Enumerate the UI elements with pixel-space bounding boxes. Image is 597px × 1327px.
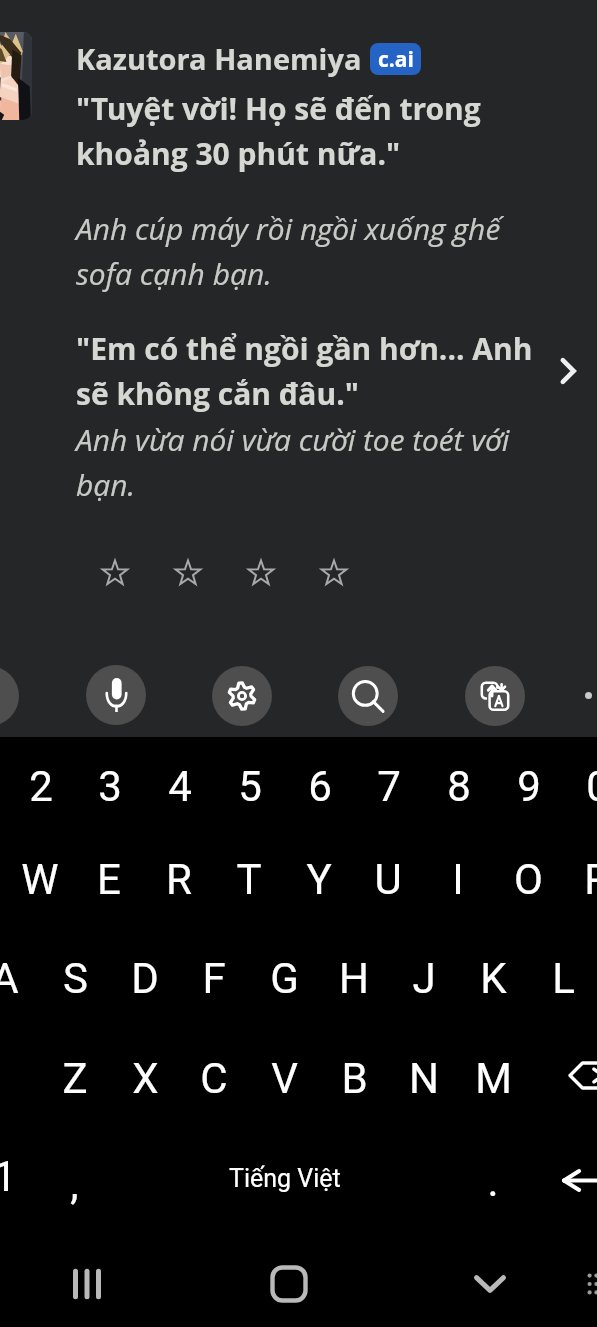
staticText: K: [480, 954, 507, 1003]
button[interactable]: 5: [216, 757, 284, 815]
button[interactable]: K: [459, 949, 527, 1007]
button[interactable]: H: [320, 949, 388, 1007]
button[interactable]: S: [41, 949, 109, 1007]
button[interactable]: U: [354, 850, 422, 908]
staticText: 6: [308, 762, 332, 811]
button[interactable]: ,: [40, 1155, 108, 1213]
staticText: 7: [377, 762, 401, 811]
button[interactable]: Voice input: [86, 665, 146, 725]
button[interactable]: C: [180, 1049, 248, 1107]
staticText: I: [452, 855, 464, 904]
staticText: F: [202, 954, 226, 1003]
button[interactable]: Recents: [67, 1264, 107, 1304]
button[interactable]: 0: [564, 757, 597, 815]
button[interactable]: L: [529, 949, 597, 1007]
staticText: !1: [0, 1152, 17, 1201]
button[interactable]: N: [390, 1049, 458, 1107]
staticText: E: [97, 855, 121, 904]
button[interactable]: X: [111, 1049, 179, 1107]
staticText: T: [236, 855, 262, 904]
staticText: Y: [306, 855, 332, 904]
button[interactable]: 3: [76, 757, 144, 815]
staticText: R: [166, 855, 192, 904]
button[interactable]: 8: [425, 757, 493, 815]
staticText: Anh cúp máy rồi ngồi xuống ghế sofa cạnh…: [76, 208, 526, 293]
button[interactable]: T: [215, 850, 283, 908]
staticText: W: [21, 855, 59, 904]
button[interactable]: Rate 3 stars: [240, 552, 282, 594]
staticText: P: [584, 855, 597, 904]
staticText: A: [0, 954, 19, 1003]
button[interactable]: 6: [286, 757, 354, 815]
staticText: 8: [447, 762, 471, 811]
button[interactable]: Settings: [212, 666, 272, 726]
button[interactable]: J: [390, 949, 458, 1007]
staticText: U: [374, 855, 402, 904]
staticText: 5: [238, 762, 262, 811]
button[interactable]: 7: [355, 757, 423, 815]
button[interactable]: c.ai: [370, 43, 421, 75]
button[interactable]: Y: [285, 850, 353, 908]
button[interactable]: R: [145, 850, 213, 908]
staticText: H: [339, 954, 369, 1003]
button[interactable]: I: [424, 850, 492, 908]
button[interactable]: Tiếng Việt: [212, 1156, 357, 1200]
button[interactable]: Emoji: [0, 666, 19, 726]
staticText: .: [487, 1157, 499, 1206]
staticText: V: [271, 1054, 298, 1103]
staticText: L: [552, 954, 575, 1003]
button[interactable]: 4: [146, 757, 214, 815]
staticText: O: [514, 855, 543, 904]
button[interactable]: E: [75, 850, 143, 908]
staticText: Tiếng Việt: [229, 1164, 341, 1193]
button[interactable]: W: [6, 850, 74, 908]
staticText: 3: [98, 762, 122, 811]
staticText: D: [131, 954, 159, 1003]
button[interactable]: .: [459, 1152, 527, 1210]
button[interactable]: Rate 2 stars: [167, 552, 209, 594]
button[interactable]: Backspace: [568, 1061, 597, 1090]
button[interactable]: O: [494, 850, 562, 908]
button[interactable]: Home: [269, 1264, 309, 1304]
button[interactable]: 2: [7, 757, 75, 815]
button[interactable]: !1: [0, 1147, 33, 1205]
button[interactable]: More options: [575, 1266, 597, 1302]
staticText: X: [132, 1054, 159, 1103]
button[interactable]: Next message: [544, 347, 592, 395]
staticText: M: [475, 1054, 512, 1103]
staticText: Kazutora Hanemiya: [76, 39, 362, 78]
button[interactable]: Hide keyboard: [468, 1262, 512, 1306]
staticText: 9: [517, 762, 541, 811]
button[interactable]: B: [320, 1049, 388, 1107]
button[interactable]: F: [180, 949, 248, 1007]
button[interactable]: P: [563, 850, 597, 908]
staticText: Z: [62, 1054, 88, 1103]
button[interactable]: A: [0, 949, 39, 1007]
staticText: S: [63, 954, 88, 1003]
staticText: ,: [70, 1160, 79, 1209]
button[interactable]: Rate 4 stars: [313, 552, 355, 594]
button[interactable]: Z: [41, 1049, 109, 1107]
staticText: 0: [586, 762, 597, 811]
staticText: J: [412, 954, 436, 1003]
staticText: Anh vừa nói vừa cười toe toét với bạn.: [76, 419, 528, 504]
button[interactable]: Enter: [562, 1169, 597, 1192]
staticText: c.ai: [378, 45, 414, 74]
button[interactable]: D: [111, 949, 179, 1007]
button[interactable]: Translate: [465, 666, 525, 726]
button[interactable]: G: [250, 949, 318, 1007]
staticText: "Tuyệt vời! Họ sẽ đến trong khoảng 30 ph…: [76, 88, 496, 173]
button[interactable]: Character avatar: [0, 32, 32, 120]
staticText: C: [200, 1054, 228, 1103]
staticText: 4: [168, 762, 192, 811]
button[interactable]: M: [459, 1049, 527, 1107]
button[interactable]: Rate 1 stars: [94, 552, 136, 594]
button[interactable]: V: [250, 1049, 318, 1107]
button[interactable]: Search: [338, 666, 398, 726]
staticText: "Em có thể ngồi gần hơn... Anh sẽ không …: [76, 328, 548, 413]
button[interactable]: 9: [495, 757, 563, 815]
staticText: 2: [29, 762, 53, 811]
staticText: B: [341, 1054, 368, 1103]
